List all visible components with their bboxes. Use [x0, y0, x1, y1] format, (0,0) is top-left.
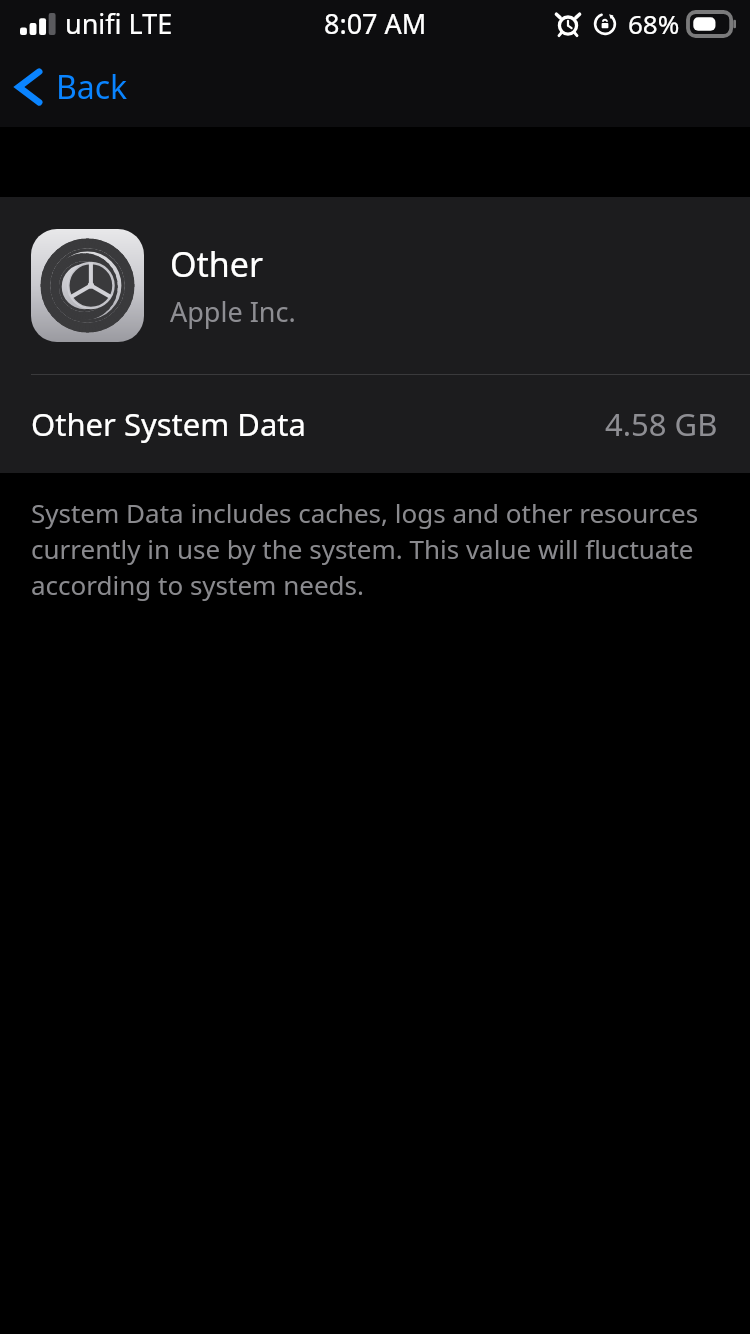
button[interactable]: Back	[14, 46, 128, 127]
button[interactable]: Other System Data	[0, 375, 750, 473]
button[interactable]: Other	[0, 197, 750, 374]
staticText: Apple Inc.	[170, 293, 296, 330]
staticText: 68%	[628, 6, 680, 41]
staticText: Back	[56, 65, 128, 109]
other: Back	[14, 67, 44, 107]
staticText: 4.58 GB	[605, 403, 718, 445]
staticText: unifi LTE	[65, 5, 173, 42]
staticText: Other	[170, 241, 264, 287]
staticText: System Data includes caches, logs and ot…	[31, 495, 710, 603]
staticText: Other System Data	[31, 403, 306, 445]
staticText: 8:07 AM	[324, 5, 427, 42]
